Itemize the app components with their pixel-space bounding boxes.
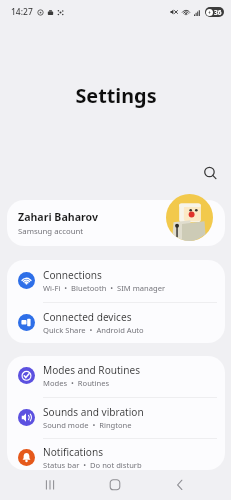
button[interactable]: Zahari Baharov — [7, 200, 225, 246]
button[interactable]: Connected devices — [7, 302, 225, 343]
staticText: 14:27 — [11, 6, 33, 18]
staticText: Status bar • Do not disturb — [43, 460, 142, 470]
button[interactable]: Recent apps — [34, 470, 66, 500]
staticText: 36 — [214, 8, 222, 17]
staticText: Modes and Routines — [43, 363, 140, 377]
staticText: Settings — [75, 82, 157, 109]
button[interactable]: Connections — [7, 260, 225, 302]
staticText: Wi-Fi • Bluetooth • SIM manager — [43, 283, 166, 293]
button[interactable]: Search — [197, 160, 223, 186]
button[interactable]: Home — [99, 470, 131, 500]
staticText: Sounds and vibration — [43, 405, 144, 419]
staticText: Samsung account — [18, 226, 84, 237]
staticText: Connections — [43, 268, 102, 282]
staticText: Zahari Baharov — [18, 210, 98, 224]
staticText: Sound mode • Ringtone — [43, 420, 132, 430]
staticText: Connected devices — [43, 310, 132, 324]
staticText: Quick Share • Android Auto — [43, 325, 144, 335]
button[interactable]: Back — [164, 470, 196, 500]
staticText: Modes • Routines — [43, 378, 110, 388]
button[interactable]: Sounds and vibration — [7, 398, 225, 438]
button[interactable]: Modes and Routines — [7, 356, 225, 397]
button[interactable]: Notifications — [7, 438, 225, 470]
staticText: Notifications — [43, 445, 104, 459]
